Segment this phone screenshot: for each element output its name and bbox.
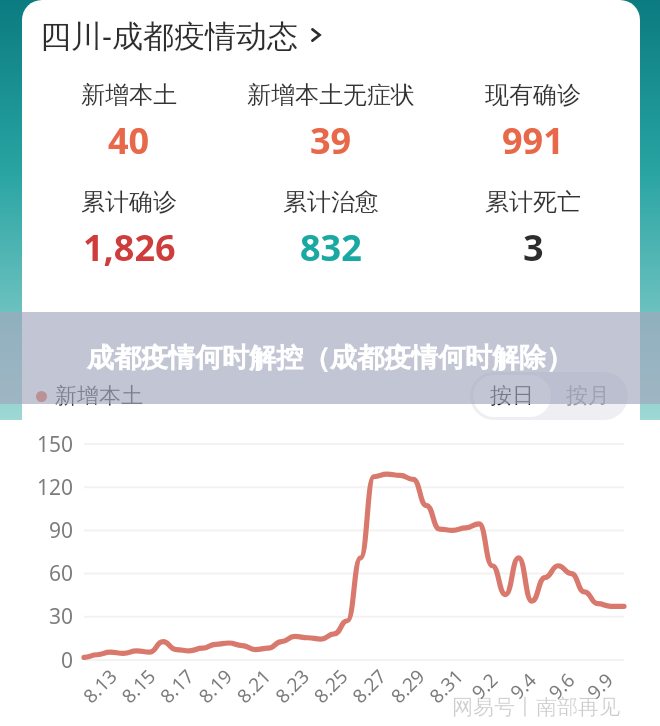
- button[interactable]: 四川-成都疫情动态: [22, 0, 640, 60]
- button[interactable]: 现有确诊: [432, 80, 634, 165]
- staticText: 1,826: [83, 223, 176, 272]
- staticText: 四川-成都疫情动态: [40, 14, 298, 56]
- button[interactable]: 按月: [551, 375, 625, 417]
- staticText: 832: [300, 223, 362, 272]
- staticText: 991: [502, 116, 564, 165]
- staticText: 累计确诊: [81, 187, 177, 217]
- button[interactable]: 新增本土: [28, 80, 230, 165]
- staticText: 成都疫情何时解控（成都疫情何时解除）: [87, 341, 573, 375]
- button[interactable]: 新增本土无症状: [230, 80, 432, 165]
- button[interactable]: 按日: [473, 375, 551, 417]
- staticText: 新增本土: [55, 382, 143, 410]
- staticText: 3: [523, 223, 544, 272]
- button[interactable]: 累计死亡: [432, 187, 634, 272]
- staticText: 按日: [490, 382, 534, 410]
- staticText: 新增本土无症状: [247, 80, 415, 110]
- button[interactable]: 累计确诊: [28, 187, 230, 272]
- button[interactable]: 累计治愈: [230, 187, 432, 272]
- staticText: 40: [108, 116, 150, 165]
- staticText: 现有确诊: [485, 80, 581, 110]
- staticText: 新增本土: [81, 80, 177, 110]
- staticText: 39: [310, 116, 352, 165]
- staticText: 按月: [566, 382, 610, 410]
- staticText: 累计治愈: [283, 187, 379, 217]
- staticText: 累计死亡: [485, 187, 581, 217]
